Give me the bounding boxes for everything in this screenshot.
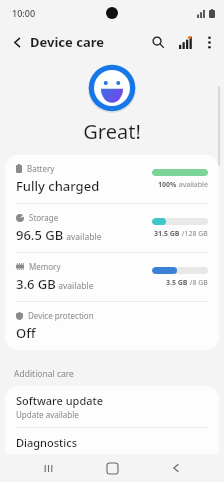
staticText: 96.5 GB bbox=[16, 226, 64, 244]
button[interactable]: Home bbox=[96, 454, 128, 482]
staticText: Device care bbox=[30, 33, 104, 51]
staticText: 3.6 GB bbox=[16, 275, 56, 293]
staticText: 100% bbox=[158, 180, 177, 190]
staticText: Fully charged bbox=[16, 177, 100, 195]
button[interactable]: Memory bbox=[5, 253, 219, 301]
staticText: Update available bbox=[16, 409, 79, 420]
button[interactable]: Device protection bbox=[5, 302, 219, 350]
button[interactable]: Battery bbox=[5, 155, 219, 203]
staticText: available bbox=[177, 180, 208, 190]
button[interactable]: Storage bbox=[5, 204, 219, 252]
button[interactable]: Usage bbox=[171, 29, 197, 55]
staticText: 31.5 GB bbox=[154, 229, 180, 239]
button[interactable]: Software update bbox=[5, 386, 219, 427]
staticText: Great! bbox=[83, 118, 141, 145]
staticText: /128 GB bbox=[180, 229, 208, 239]
staticText: /8 GB bbox=[188, 278, 208, 288]
button[interactable]: Back bbox=[4, 29, 30, 55]
staticText: Off bbox=[16, 324, 36, 342]
button[interactable]: Diagnostics bbox=[5, 428, 219, 462]
staticText: 3.5 GB bbox=[166, 278, 188, 288]
staticText: 10:00 bbox=[12, 7, 36, 19]
button[interactable]: Search bbox=[145, 29, 171, 55]
staticText: Memory bbox=[29, 261, 61, 272]
staticText: Device protection bbox=[28, 310, 94, 321]
staticText: Battery bbox=[27, 163, 55, 174]
staticText: available bbox=[56, 280, 94, 292]
staticText: Additional care bbox=[14, 368, 74, 380]
button[interactable]: More options bbox=[197, 30, 221, 54]
button[interactable]: Recents bbox=[32, 454, 64, 482]
staticText: Software update bbox=[16, 393, 104, 408]
staticText: Diagnostics bbox=[16, 435, 78, 450]
staticText: Storage bbox=[29, 212, 59, 223]
button[interactable]: Back bbox=[160, 454, 192, 482]
staticText: available bbox=[64, 231, 102, 243]
